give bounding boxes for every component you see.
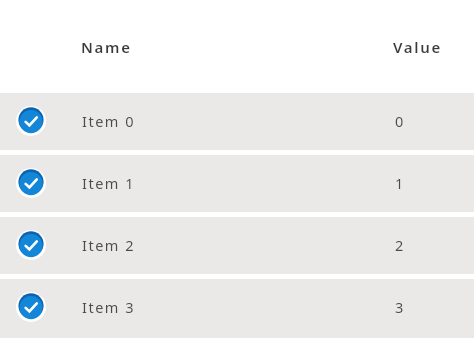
button[interactable]: Selected item 0 bbox=[0, 93, 474, 150]
staticText: 3 bbox=[395, 297, 405, 317]
other: Selected item 3 bbox=[14, 290, 48, 324]
staticText: Item 3 bbox=[82, 297, 135, 317]
other: Selected item 1 bbox=[14, 166, 48, 200]
other: Selected item 2 bbox=[14, 228, 48, 262]
staticText: Value bbox=[393, 37, 443, 57]
button[interactable]: Selected item 3 bbox=[0, 279, 474, 338]
staticText: Item 1 bbox=[82, 173, 135, 193]
staticText: Item 2 bbox=[82, 235, 135, 255]
staticText: Item 0 bbox=[82, 111, 135, 131]
staticText: 0 bbox=[395, 111, 405, 131]
button[interactable]: Selected item 1 bbox=[0, 155, 474, 212]
staticText: Name bbox=[81, 37, 132, 57]
staticText: 2 bbox=[395, 235, 405, 255]
other: Selected item 0 bbox=[14, 104, 48, 138]
staticText: 1 bbox=[395, 173, 405, 193]
button[interactable]: Selected item 2 bbox=[0, 217, 474, 274]
